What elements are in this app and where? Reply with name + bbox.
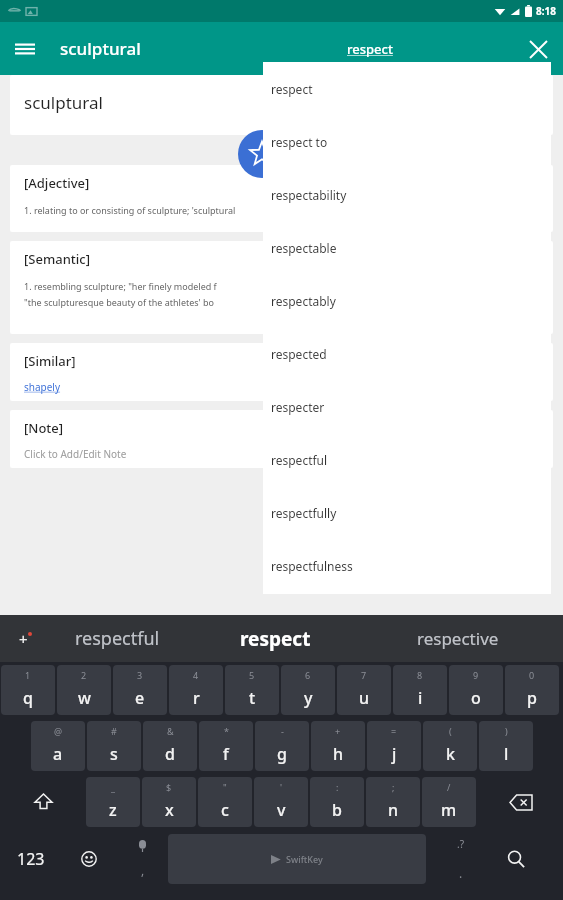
staticText: u <box>359 687 370 709</box>
button[interactable]: respected <box>263 327 551 380</box>
button[interactable]: respectable <box>263 221 551 274</box>
staticText: [Adjective] <box>24 174 90 192</box>
button[interactable]: ' <box>254 777 308 827</box>
staticText: " <box>223 781 227 793</box>
button[interactable]: Voice input <box>116 830 168 888</box>
staticText: 4 <box>193 669 199 681</box>
staticText: 0 <box>529 669 535 681</box>
staticText: p <box>527 687 537 709</box>
button[interactable]: $ <box>142 777 196 827</box>
button[interactable]: 5 <box>225 665 279 715</box>
staticText: c <box>221 799 229 821</box>
button[interactable]: respectfully <box>263 486 551 539</box>
button[interactable]: Open navigation menu <box>0 24 50 74</box>
staticText: r <box>193 687 200 709</box>
staticText: # <box>111 725 117 737</box>
staticText: v <box>277 799 286 821</box>
staticText: 2 <box>81 669 87 681</box>
button[interactable]: respect to <box>263 115 551 168</box>
staticText: ( <box>449 725 452 737</box>
staticText: respectfulness <box>271 558 353 574</box>
staticText: respectfully <box>271 505 337 521</box>
button[interactable]: # <box>87 721 141 771</box>
button[interactable]: ) <box>479 721 533 771</box>
staticText: @ <box>54 725 63 737</box>
staticText: respective <box>417 627 499 650</box>
staticText: w <box>78 687 91 709</box>
staticText: [Semantic] <box>24 250 90 268</box>
staticText: 8:18 <box>536 4 556 18</box>
button[interactable]: shapely <box>24 380 61 394</box>
staticText: sculptural <box>24 91 103 114</box>
button[interactable]: 1 <box>1 665 55 715</box>
staticText: m <box>441 799 457 821</box>
button[interactable]: respect <box>347 40 393 58</box>
staticText: 1 <box>25 669 31 681</box>
staticText: x <box>165 799 174 821</box>
button[interactable]: respectfulness <box>263 539 551 592</box>
button[interactable]: respectful <box>263 433 551 486</box>
staticText: y <box>304 687 313 709</box>
staticText: * <box>224 725 229 737</box>
staticText: _ <box>111 781 115 793</box>
staticText: "the sculpturesque beauty of the athlete… <box>24 296 214 308</box>
button[interactable]: [Note] <box>24 419 127 461</box>
button[interactable]: Shift <box>0 774 86 830</box>
staticText: [Similar] <box>24 352 76 370</box>
button[interactable]: Add to favourites <box>238 130 286 178</box>
button[interactable]: - <box>255 721 309 771</box>
staticText: . <box>459 865 463 881</box>
button[interactable]: 7 <box>337 665 391 715</box>
button[interactable]: respecter <box>263 380 551 433</box>
staticText: a <box>53 743 63 765</box>
button[interactable]: * <box>199 721 253 771</box>
button[interactable]: 4 <box>169 665 223 715</box>
button[interactable]: " <box>198 777 252 827</box>
button[interactable]: / <box>422 777 476 827</box>
button[interactable]: 6 <box>281 665 335 715</box>
button[interactable]: respectful <box>52 615 182 662</box>
staticText: t <box>249 687 256 709</box>
button[interactable]: Close search <box>513 24 563 74</box>
button[interactable]: Add word <box>0 615 50 662</box>
button[interactable]: [Similar] <box>10 343 553 401</box>
button[interactable]: @ <box>31 721 85 771</box>
button[interactable]: respectability <box>263 168 551 221</box>
button[interactable]: + <box>311 721 365 771</box>
button[interactable]: [Semantic] <box>10 241 553 334</box>
staticText: 123 <box>17 848 45 870</box>
button[interactable]: 9 <box>449 665 503 715</box>
button[interactable]: respectably <box>263 274 551 327</box>
staticText: o <box>471 687 481 709</box>
button[interactable]: ; <box>366 777 420 827</box>
button[interactable]: 123 <box>0 830 62 888</box>
staticText: l <box>504 743 509 765</box>
button[interactable]: ( <box>423 721 477 771</box>
button[interactable]: .? <box>426 830 563 888</box>
button[interactable]: [Note] <box>10 410 553 468</box>
staticText: 6 <box>305 669 311 681</box>
button[interactable]: respective <box>370 615 545 662</box>
button[interactable]: Space <box>168 834 426 884</box>
button[interactable]: [Adjective] <box>10 165 553 232</box>
button[interactable]: sculptural <box>10 75 553 135</box>
staticText: : <box>336 781 339 793</box>
staticText: e <box>135 687 145 709</box>
button[interactable]: 8 <box>393 665 447 715</box>
staticText: 1. relating to or consisting of sculptur… <box>24 204 236 216</box>
button[interactable]: 0 <box>505 665 559 715</box>
staticText: + <box>335 725 341 737</box>
staticText: f <box>223 743 229 765</box>
button[interactable]: & <box>143 721 197 771</box>
button[interactable]: _ <box>86 777 140 827</box>
button[interactable]: Search <box>499 842 533 876</box>
button[interactable]: respect <box>200 615 350 662</box>
button[interactable]: 3 <box>113 665 167 715</box>
button[interactable]: : <box>310 777 364 827</box>
button[interactable]: 2 <box>57 665 111 715</box>
button[interactable]: Emoji <box>62 830 116 888</box>
staticText: = <box>391 725 397 737</box>
button[interactable]: Backspace <box>478 774 563 830</box>
button[interactable]: = <box>367 721 421 771</box>
button[interactable]: respect <box>263 62 551 115</box>
